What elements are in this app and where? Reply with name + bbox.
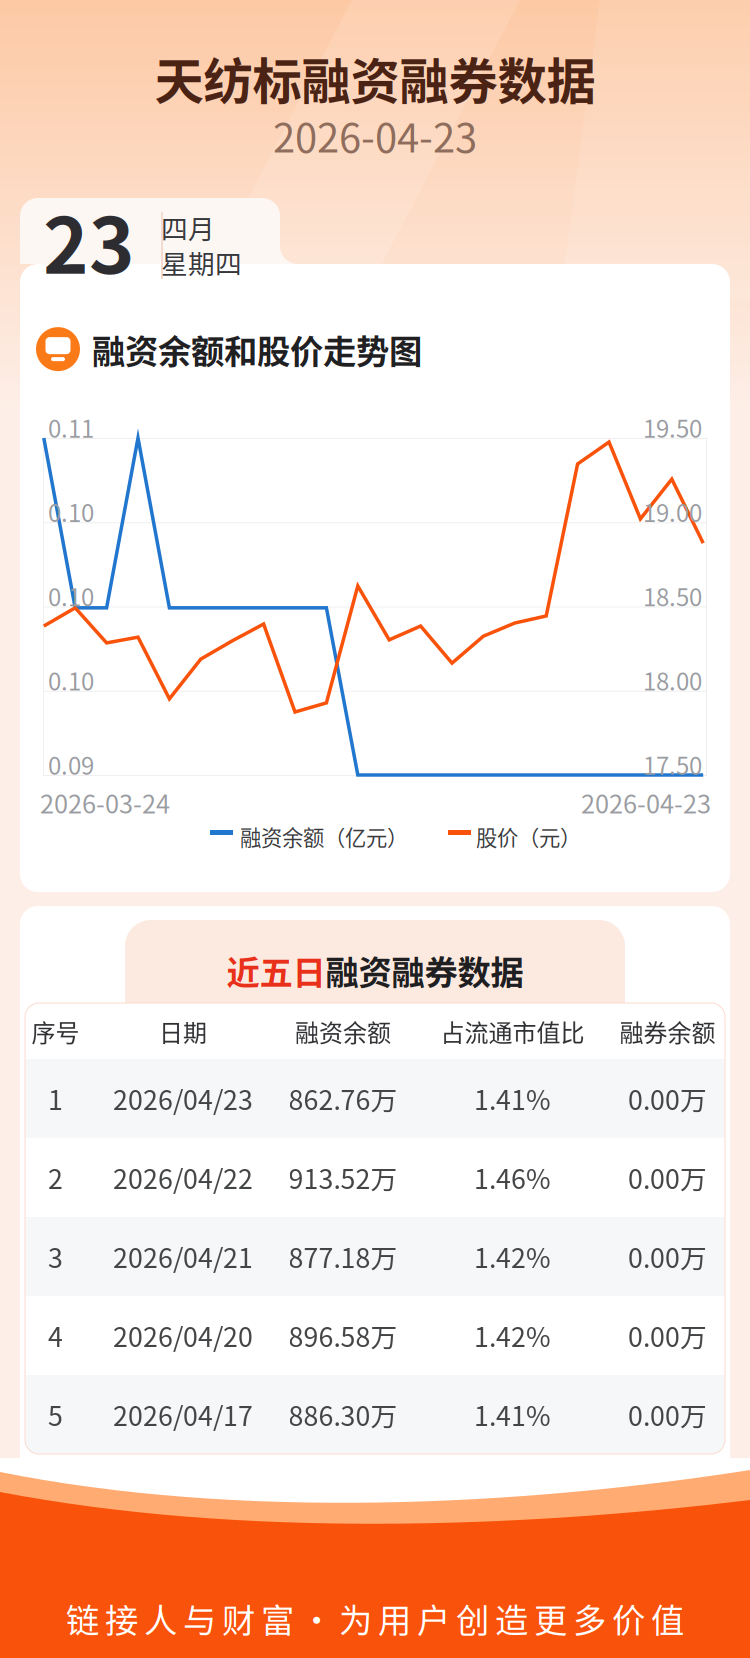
staticText: 2026-03-24 [40,784,170,821]
staticText: 0.00万 [628,1237,707,1276]
staticText: 17.50 [643,747,702,782]
staticText: 占流通市值比 [441,1014,585,1049]
staticText: 18.00 [643,663,702,698]
staticText: 融资融券数据 [325,946,523,994]
staticText: 2026-04-23 [581,784,711,821]
staticText: 1.46% [474,1158,551,1197]
staticText: 融资余额（亿元） [240,821,408,852]
staticText: 链接人与财富·为用户创造更多价值 [66,1594,684,1642]
staticText: 23 [43,184,135,296]
staticText: 2026-04-23 [273,106,477,164]
staticText: 0.09 [48,747,94,782]
staticText: 19.00 [643,494,702,529]
staticText: 19.50 [643,410,702,445]
staticText: 2026/04/20 [113,1316,253,1355]
staticText: 0.10 [48,578,94,613]
staticText: 886.30万 [288,1395,397,1434]
staticText: 融券余额 [619,1014,715,1049]
staticText: 融资余额 [295,1014,391,1049]
staticText: 0.00万 [628,1316,707,1355]
staticText: 2026/04/23 [113,1079,253,1118]
staticText: 1.41% [474,1395,551,1434]
staticText: 序号 [31,1014,79,1049]
staticText: 2 [48,1158,63,1197]
staticText: 2026/04/21 [113,1237,253,1276]
staticText: 0.00万 [628,1079,707,1118]
staticText: 0.00万 [628,1395,707,1434]
staticText: 896.58万 [288,1316,397,1355]
staticText: 融资余额和股价走势图 [92,325,422,373]
staticText: 5 [48,1395,63,1434]
staticText: 1.42% [474,1316,551,1355]
staticText: 0.11 [48,410,94,445]
staticText: 2026/04/22 [113,1158,253,1197]
staticText: 0.10 [48,494,94,529]
staticText: 四月 [161,208,215,247]
staticText: 天纺标融资融券数据 [154,42,595,113]
staticText: 1.41% [474,1079,551,1118]
staticText: 1 [48,1079,63,1118]
staticText: 星期四 [161,243,242,282]
staticText: 18.50 [643,578,702,613]
staticText: 日期 [159,1014,207,1049]
staticText: 0.10 [48,663,94,698]
staticText: 862.76万 [288,1079,397,1118]
staticText: 4 [48,1316,63,1355]
staticText: 0.00万 [628,1158,707,1197]
staticText: 1.42% [474,1237,551,1276]
staticText: 近五日 [226,946,325,994]
staticText: 3 [48,1237,63,1276]
staticText: 877.18万 [288,1237,397,1276]
staticText: 股价（元） [476,821,581,852]
staticText: 913.52万 [288,1158,397,1197]
staticText: 2026/04/17 [113,1395,253,1434]
